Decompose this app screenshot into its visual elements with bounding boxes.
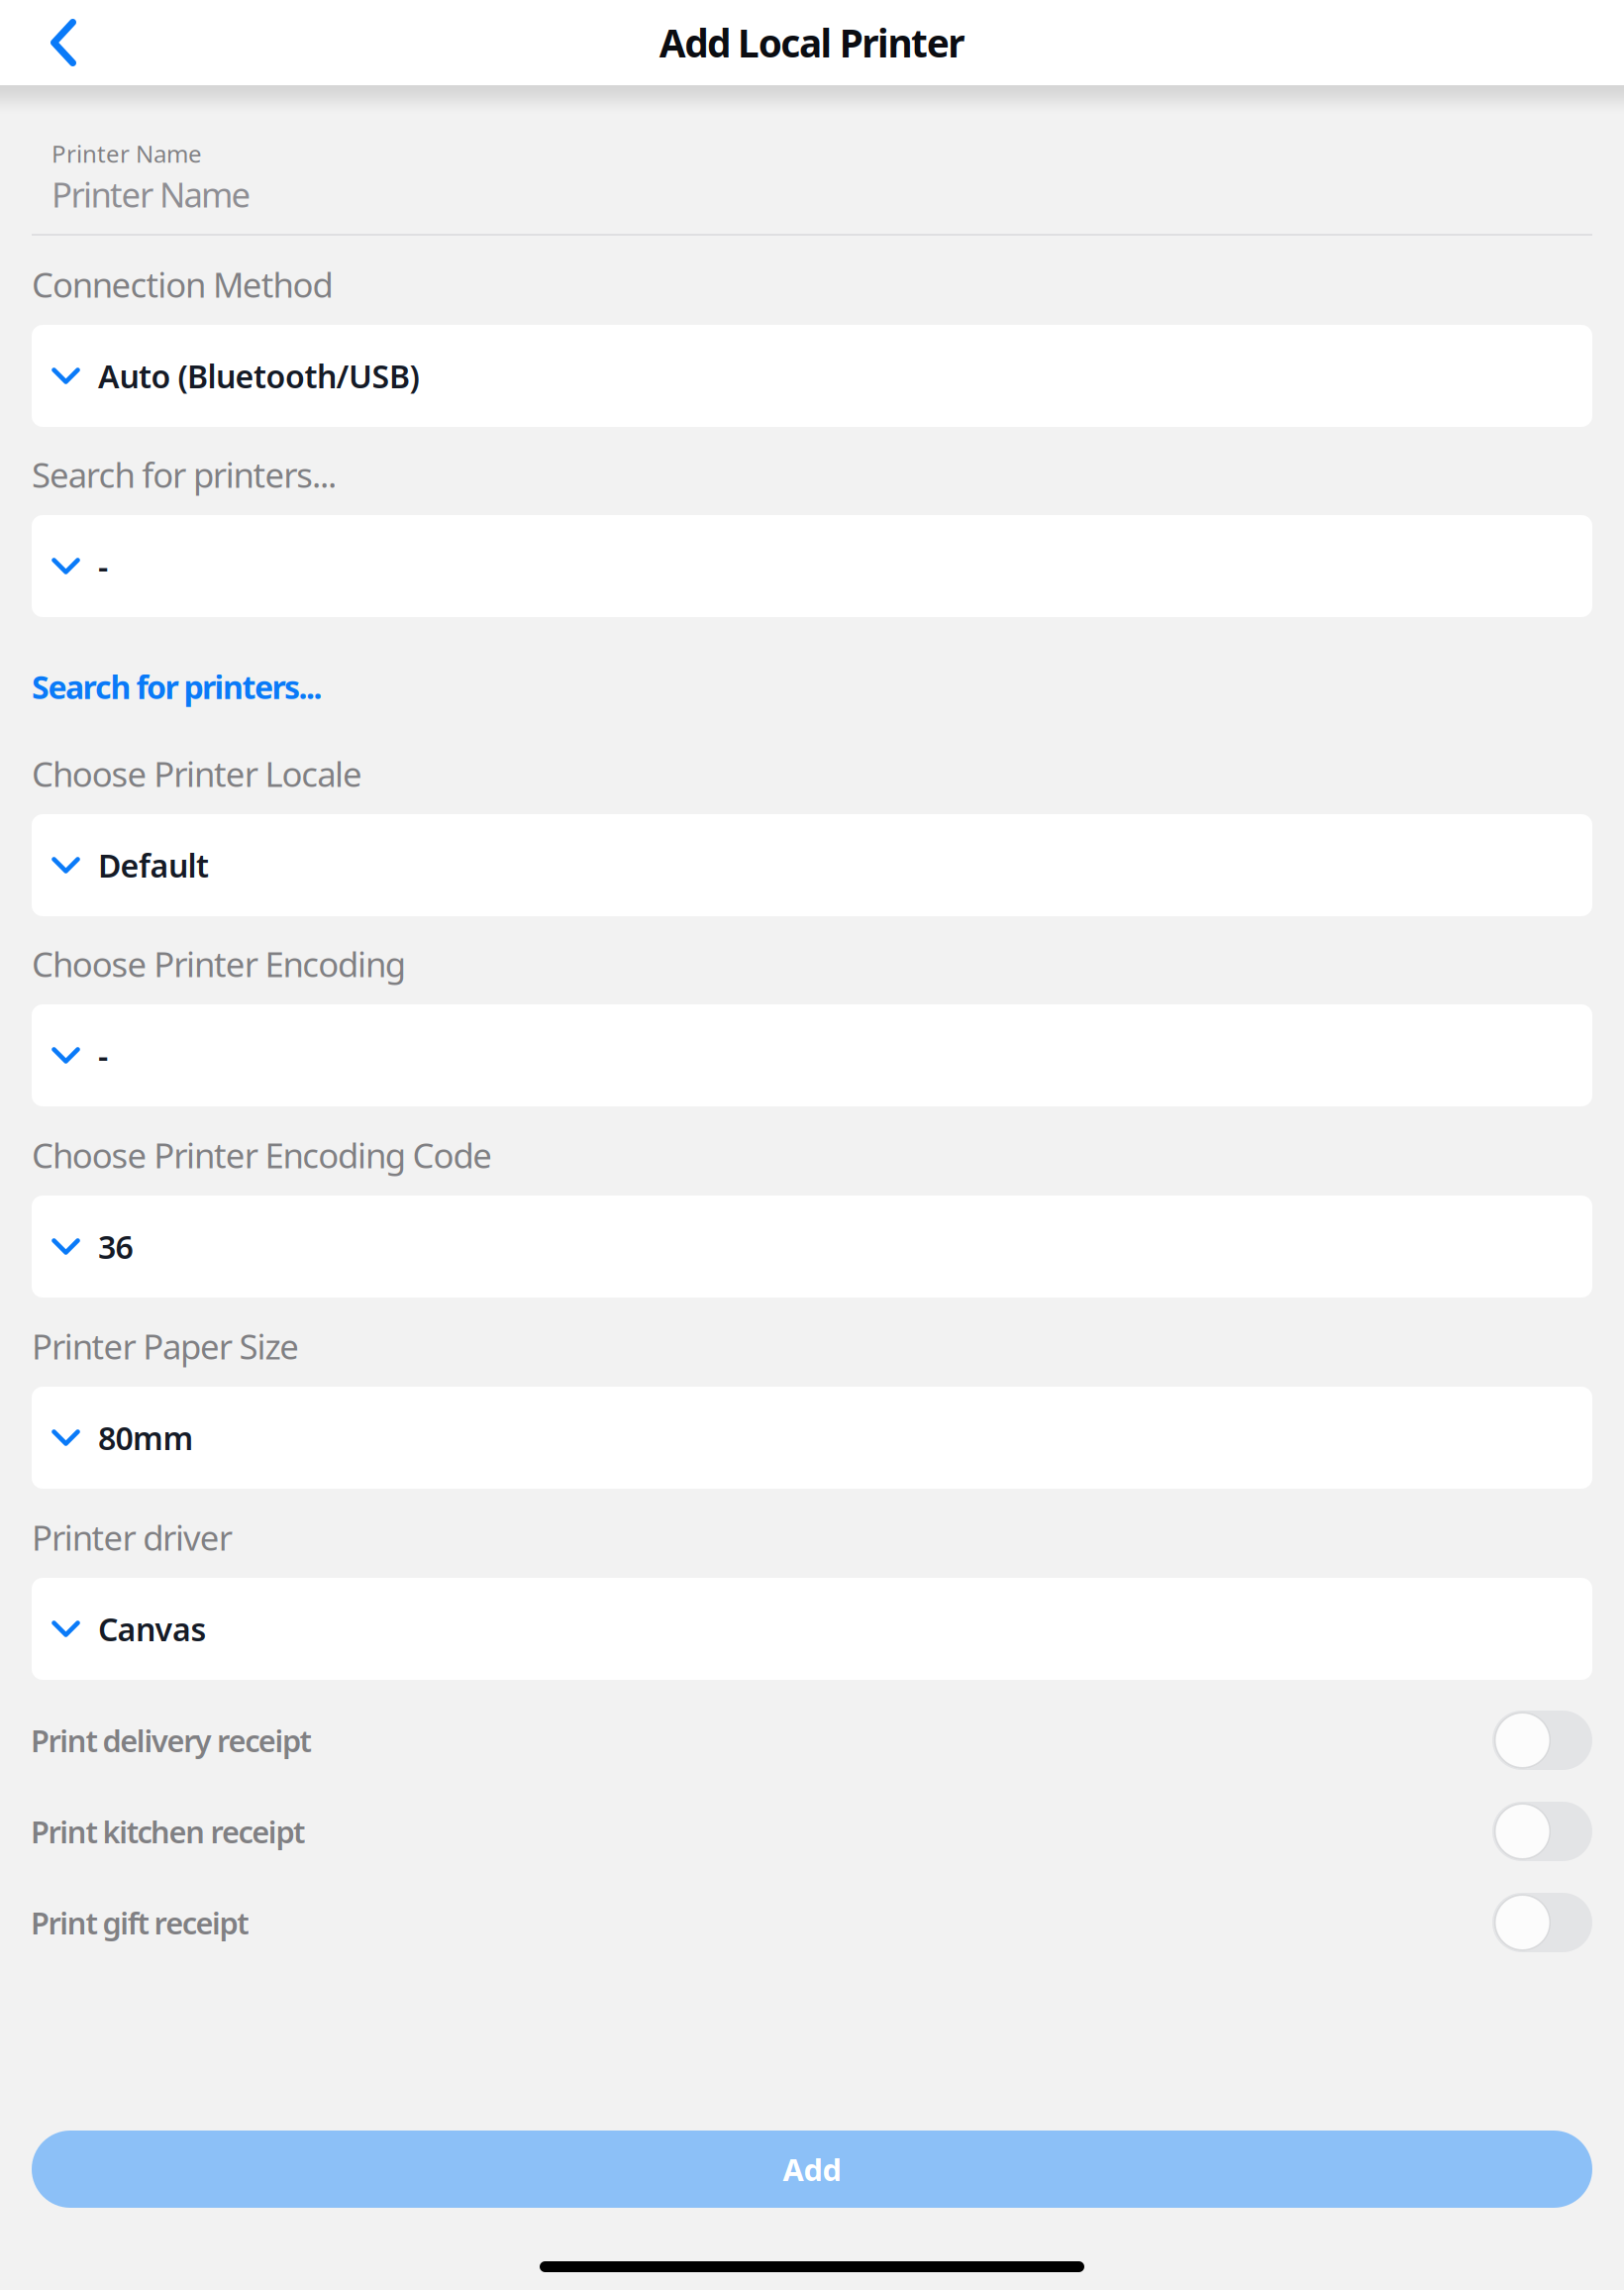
- staticText: Printer Paper Size: [32, 1323, 299, 1369]
- staticText: Choose Printer Encoding: [32, 941, 406, 987]
- staticText: Choose Printer Encoding Code: [32, 1132, 492, 1178]
- staticText: -: [98, 1034, 108, 1076]
- button[interactable]: 36: [32, 1196, 1592, 1298]
- staticText: Search for printers...: [32, 452, 337, 497]
- staticText: Print gift receipt: [31, 1902, 249, 1943]
- staticText: -: [98, 545, 108, 587]
- staticText: Add: [783, 2149, 841, 2189]
- staticText: Print kitchen receipt: [31, 1811, 305, 1852]
- staticText: Connection Method: [32, 261, 333, 307]
- button[interactable]: -: [32, 1004, 1592, 1106]
- staticText: 36: [98, 1226, 133, 1268]
- staticText: Default: [98, 844, 209, 886]
- button[interactable]: Print kitchen receipt: [0, 1786, 1624, 1877]
- staticText: Search for printers...: [32, 666, 322, 708]
- staticText: Printer driver: [32, 1514, 232, 1560]
- button[interactable]: Search for printers...: [0, 666, 322, 711]
- button[interactable]: -: [32, 515, 1592, 617]
- staticText: Print delivery receipt: [31, 1720, 312, 1760]
- button[interactable]: Print gift receipt: [0, 1877, 1624, 1968]
- staticText: Printer Name: [51, 171, 251, 217]
- staticText: Add Local Printer: [659, 17, 965, 68]
- button[interactable]: Back: [0, 0, 109, 85]
- staticText: 80mm: [98, 1417, 194, 1459]
- button[interactable]: Default: [32, 814, 1592, 916]
- button[interactable]: Add: [32, 2131, 1592, 2208]
- button[interactable]: Auto (Bluetooth/USB): [32, 325, 1592, 427]
- button[interactable]: Print delivery receipt: [0, 1695, 1624, 1786]
- button[interactable]: 80mm: [32, 1387, 1592, 1489]
- staticText: Auto (Bluetooth/USB): [98, 355, 419, 397]
- staticText: Printer Name: [51, 138, 202, 169]
- button[interactable]: Canvas: [32, 1578, 1592, 1680]
- staticText: Choose Printer Locale: [32, 751, 362, 796]
- staticText: Canvas: [98, 1608, 206, 1650]
